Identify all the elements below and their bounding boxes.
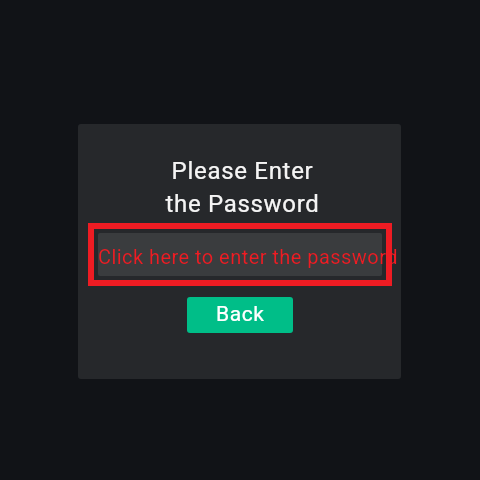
- staticText: Please Enter the Password: [81, 157, 401, 218]
- button[interactable]: Back: [187, 297, 293, 333]
- staticText: Back: [216, 302, 265, 327]
- staticText: Click here to enter the password: [98, 245, 398, 268]
- button[interactable]: Click here to enter the password: [88, 223, 392, 286]
